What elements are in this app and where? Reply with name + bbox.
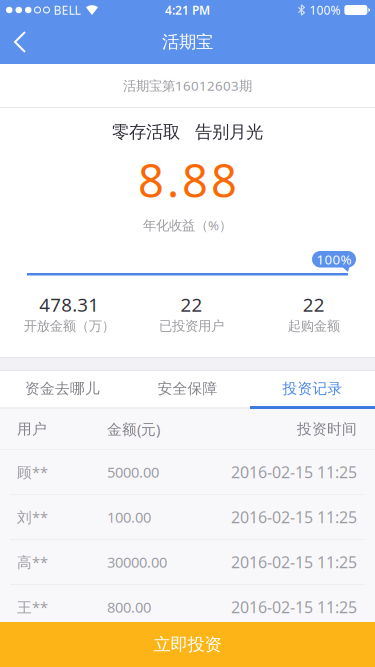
staticText: BELL (53, 2, 80, 18)
staticText: 8.88 (138, 150, 237, 210)
staticText: 活期宝第16012603期 (123, 77, 252, 94)
staticText: 用户 (17, 420, 47, 438)
staticText: 资金去哪儿 (25, 379, 100, 397)
staticText: 2016-02-15 11:25 (231, 506, 357, 528)
staticText: 478.31 (39, 292, 99, 317)
staticText: 4:21 PM (165, 2, 210, 18)
button[interactable]: 安全保障 (125, 371, 250, 406)
staticText: 5000.00 (107, 462, 159, 482)
staticText: 100% (316, 250, 351, 268)
staticText: 安全保障 (157, 379, 217, 397)
staticText: 100.00 (107, 507, 151, 527)
button[interactable]: Back (0, 20, 46, 64)
staticText: 金额(元) (107, 419, 160, 439)
staticText: 800.00 (107, 597, 151, 617)
staticText: 已投资用户 (159, 318, 224, 334)
staticText: 年化收益（%） (143, 216, 232, 234)
staticText: 活期宝 (162, 31, 213, 53)
staticText: 起购金额 (288, 318, 340, 334)
button[interactable]: 资金去哪儿 (0, 371, 125, 406)
staticText: 零存活取 告别月光 (112, 121, 263, 143)
button[interactable]: 投资记录 (250, 371, 375, 406)
button[interactable]: 立即投资 (0, 622, 375, 667)
staticText: 王** (17, 597, 48, 617)
staticText: 投资时间 (297, 420, 357, 438)
staticText: 刘** (17, 507, 48, 527)
staticText: 投资记录 (282, 379, 342, 397)
staticText: 立即投资 (153, 634, 221, 655)
staticText: 高** (17, 552, 48, 572)
staticText: 22 (303, 292, 325, 317)
staticText: 2016-02-15 11:25 (231, 551, 357, 573)
staticText: 22 (180, 292, 202, 317)
staticText: 2016-02-15 11:25 (231, 461, 357, 483)
staticText: 顾** (17, 462, 48, 482)
staticText: 30000.00 (107, 552, 167, 572)
staticText: 开放金额（万） (24, 318, 115, 334)
staticText: 2016-02-15 11:25 (231, 596, 357, 618)
staticText: 100% (309, 2, 340, 18)
